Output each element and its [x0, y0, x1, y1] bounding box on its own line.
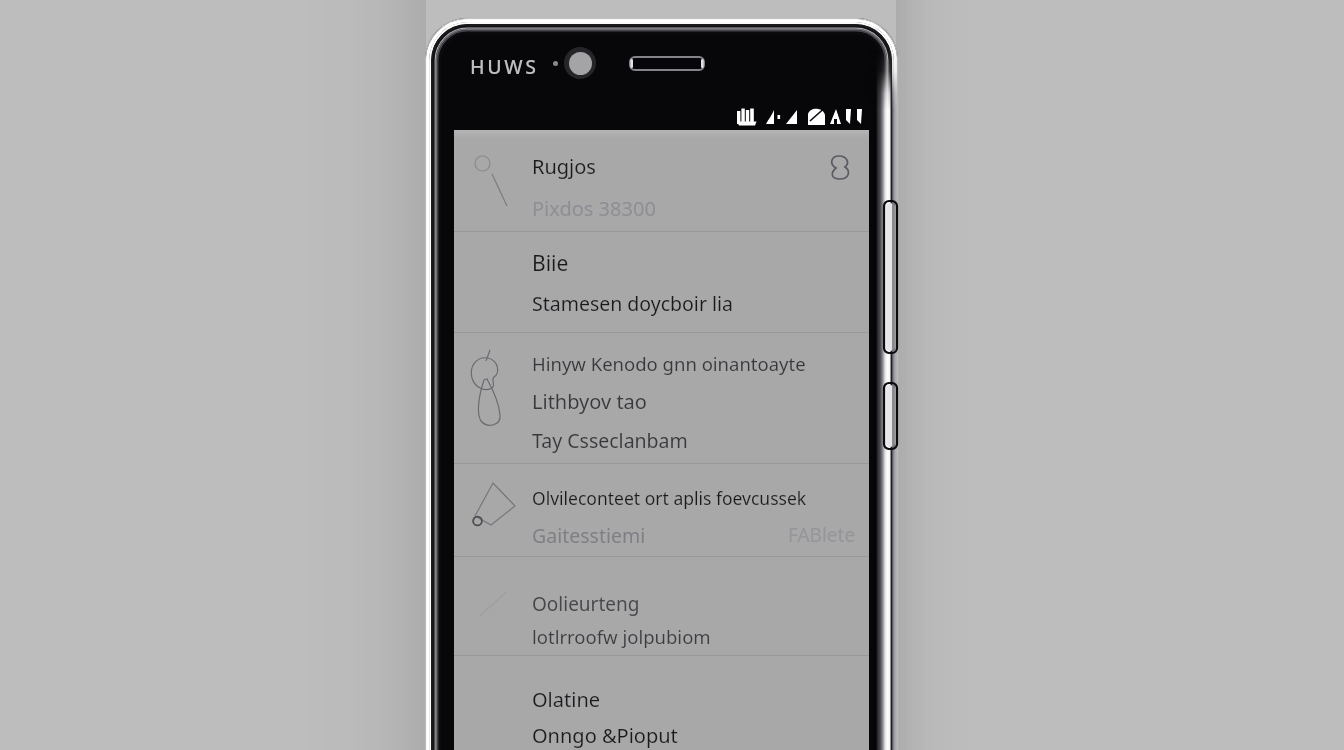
button[interactable]: [454, 556, 869, 655]
button[interactable]: [454, 332, 869, 463]
staticText: Hinyw Kenodo gnn oinantoayte: [532, 351, 806, 376]
other: Label: [467, 478, 519, 530]
button[interactable]: Power: [884, 383, 897, 449]
button[interactable]: [454, 463, 869, 556]
staticText: Lithbyov tao: [532, 388, 647, 415]
other: Search: [470, 150, 518, 198]
staticText: Rugjos: [532, 153, 596, 180]
staticText: Onngo &Pioput: [532, 722, 678, 749]
staticText: Oolieurteng: [532, 591, 640, 617]
staticText: Pixdos 38300: [532, 195, 656, 222]
staticText: Gaitesstiemi: [532, 522, 646, 549]
button[interactable]: [454, 655, 869, 750]
staticText: lotlrroofw jolpubiom: [532, 624, 711, 649]
staticText: Olvileconteet ort aplis foevcussek: [532, 486, 807, 510]
staticText: HUWS: [470, 53, 539, 80]
staticText: Biie: [532, 249, 569, 278]
staticText: Stamesen doycboir lia: [532, 290, 734, 317]
staticText: Olatine: [532, 686, 601, 713]
other: Account: [468, 347, 512, 391]
button[interactable]: Volume: [884, 201, 897, 353]
button[interactable]: [454, 130, 869, 231]
button[interactable]: [454, 231, 869, 332]
staticText: FABlete: [788, 522, 856, 548]
other: Status icons: [735, 107, 867, 127]
staticText: Tay Csseclanbam: [532, 427, 688, 454]
